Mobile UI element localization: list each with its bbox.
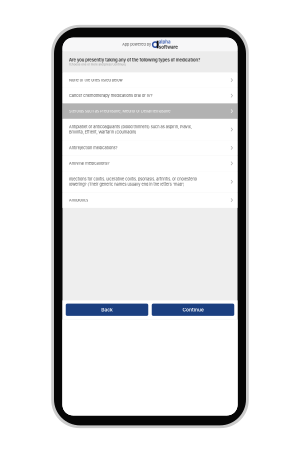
staticText: lowering? (Their generic names usually e… <box>0 49 289 68</box>
button[interactable]: Injections for colitis, ulcerative colit… <box>0 5 300 90</box>
button[interactable]: Antibiotics <box>0 90 300 152</box>
staticText: Injections for colitis, ulcerative colit… <box>0 27 300 46</box>
